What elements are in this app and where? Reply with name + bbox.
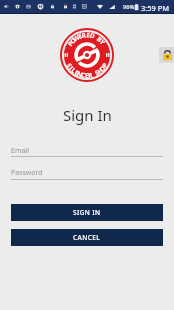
staticText: CANCEL (73, 233, 101, 242)
staticText: Sign In (63, 105, 112, 125)
button[interactable]: Email (11, 0, 163, 10)
button[interactable]: CANCEL (11, 229, 163, 246)
staticText: 96% (123, 3, 135, 11)
button[interactable]: Password (11, 0, 163, 10)
button[interactable]: Password manager (159, 47, 174, 63)
staticText: Email (11, 146, 29, 156)
button[interactable]: SIGN IN (11, 204, 163, 221)
staticText: SIGN IN (73, 208, 101, 217)
staticText: 3:59 PM (141, 3, 170, 13)
staticText: Password (11, 168, 43, 178)
